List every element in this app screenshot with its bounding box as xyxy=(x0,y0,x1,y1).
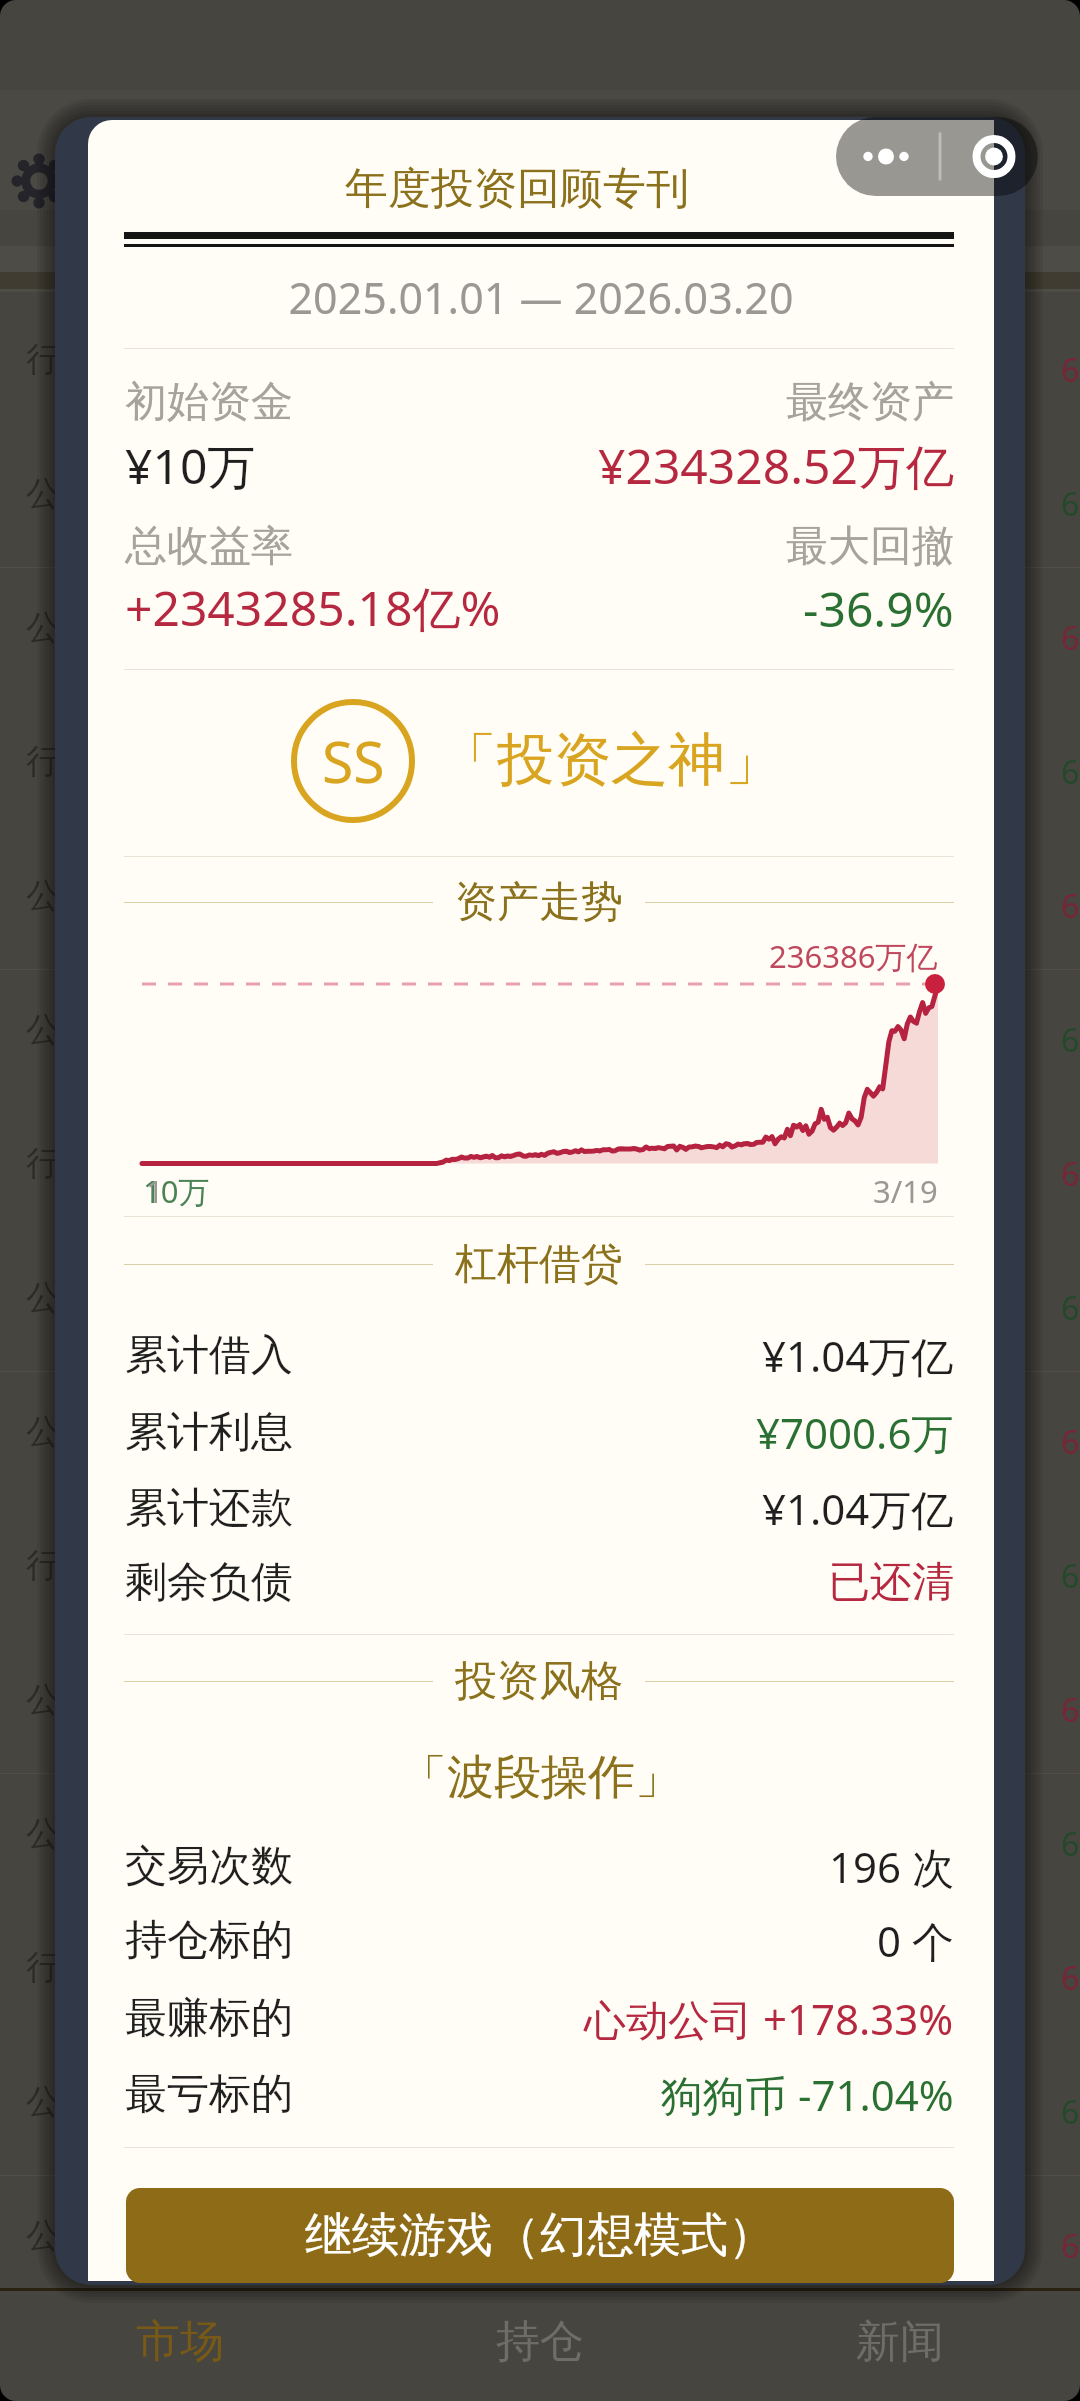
staticText: 行业 xyxy=(26,338,94,381)
staticText: 6% xyxy=(1061,1688,1080,1732)
staticText: 行业 xyxy=(26,1946,94,1989)
staticText: 6% xyxy=(1061,884,1080,928)
staticText: 投资风格 xyxy=(455,1655,623,1708)
staticText: 「投资之神」 xyxy=(440,724,920,796)
staticText: 交易次数 xyxy=(125,1840,293,1893)
staticText: ¥234328.52万亿 xyxy=(598,433,954,499)
staticText: 狗狗币 -71.04% xyxy=(661,2066,954,2123)
staticText: 公司 xyxy=(26,1008,94,1051)
staticText: 公司 xyxy=(26,1678,94,1721)
staticText: 6% xyxy=(1061,1018,1080,1062)
staticText: 10万 xyxy=(143,1170,210,1212)
staticText: ¥1.04万亿 xyxy=(762,1480,954,1537)
button[interactable]: 市场 xyxy=(0,2291,360,2391)
staticText: 196 次 xyxy=(829,1838,954,1895)
staticText: -36.9% xyxy=(803,576,954,641)
staticText: 公司 xyxy=(26,1276,94,1319)
staticText: 资产走势 xyxy=(455,876,623,929)
button[interactable]: 新闻 xyxy=(720,2291,1080,2391)
staticText: 公司 xyxy=(26,2214,94,2257)
staticText: 6% xyxy=(1061,1286,1080,1330)
staticText: 累计还款 xyxy=(125,1482,293,1535)
staticText: 杠杆借贷 xyxy=(455,1238,623,1291)
button[interactable]: 继续游戏（幻想模式） xyxy=(126,2188,954,2283)
staticText: 总收益率 xyxy=(125,520,293,573)
button[interactable]: Settings xyxy=(13,155,65,207)
staticText: ¥1.04万亿 xyxy=(762,1327,954,1384)
staticText: 6% xyxy=(1061,1822,1080,1866)
staticText: 6% xyxy=(1061,2090,1080,2134)
staticText: 公司 xyxy=(26,874,94,917)
staticText: SS xyxy=(322,722,385,800)
staticText: 6% xyxy=(1061,1152,1080,1196)
staticText: 公司 xyxy=(26,606,94,649)
staticText: 1 xyxy=(146,1170,164,1212)
staticText: ¥10万 xyxy=(125,433,256,499)
button[interactable]: 持仓 xyxy=(360,2291,720,2391)
staticText: 6% xyxy=(1061,348,1080,392)
staticText: 行业 xyxy=(26,1142,94,1185)
staticText: 已还清 xyxy=(828,1556,954,1609)
staticText: 最赚标的 xyxy=(125,1992,293,2045)
staticText: 2025.01.01 — 2026.03.20 xyxy=(88,268,994,327)
staticText: 新闻 xyxy=(856,2314,944,2369)
staticText: 公司 xyxy=(26,1812,94,1855)
staticText: 6% xyxy=(1061,2358,1080,2401)
staticText: 最终资产 xyxy=(786,376,954,429)
staticText: 6% xyxy=(1061,750,1080,794)
staticText: 持仓标的 xyxy=(125,1914,293,1967)
staticText: 继续游戏（幻想模式） xyxy=(305,2206,775,2265)
staticText: 最亏标的 xyxy=(125,2068,293,2121)
staticText: 「波段操作」 xyxy=(88,1748,994,1807)
staticText: 6% xyxy=(1061,482,1080,526)
staticText: 6% xyxy=(1061,1554,1080,1598)
staticText: 持仓 xyxy=(496,2314,584,2369)
staticText: 行业 xyxy=(26,1544,94,1587)
staticText: 初始资金 xyxy=(125,376,293,429)
staticText: +2343285.18亿% xyxy=(125,575,501,641)
staticText: 6% xyxy=(1061,616,1080,660)
staticText: 累计借入 xyxy=(125,1329,293,1382)
staticText: 心动公司 +178.33% xyxy=(584,1990,954,2047)
staticText: 最大回撤 xyxy=(786,520,954,573)
staticText: 6% xyxy=(1061,2224,1080,2268)
staticText: 236386万亿 xyxy=(769,935,938,977)
staticText: 行业 xyxy=(26,740,94,783)
staticText: 公司 xyxy=(26,2080,94,2123)
staticText: ¥7000.6万 xyxy=(756,1404,954,1461)
staticText: 累计利息 xyxy=(125,1406,293,1459)
staticText: 6% xyxy=(1061,1420,1080,1464)
staticText: 公司 xyxy=(26,1410,94,1453)
staticText: 公司 xyxy=(26,472,94,515)
staticText: 6% xyxy=(1061,1956,1080,2000)
staticText: 3/19 xyxy=(873,1170,938,1212)
staticText: 0 个 xyxy=(877,1912,954,1969)
staticText: 剩余负债 xyxy=(125,1556,293,1609)
staticText: 年度投资回顾专刊 xyxy=(88,162,946,216)
button[interactable]: More options xyxy=(836,117,1038,196)
staticText: 市场 xyxy=(136,2314,224,2369)
